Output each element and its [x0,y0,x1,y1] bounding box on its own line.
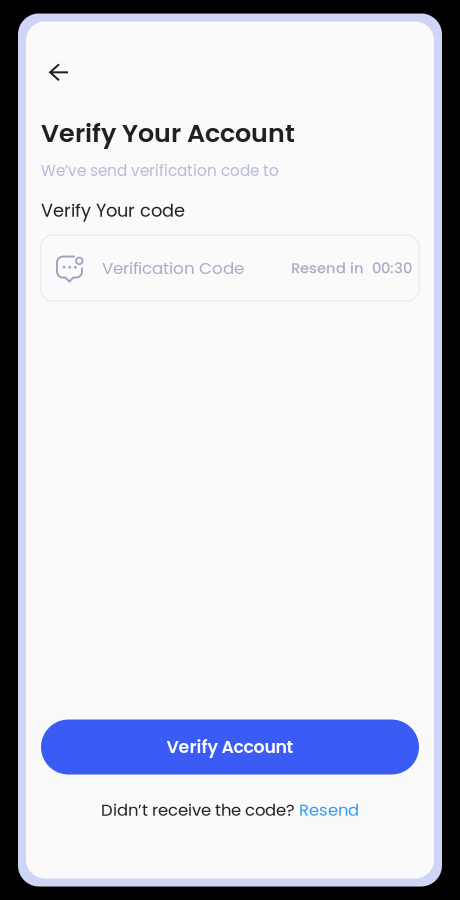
button[interactable]: Verify Account [41,719,419,774]
staticText: Verification Code [102,256,244,280]
staticText: Verify Your code [41,198,185,223]
staticText: Resend [299,798,359,821]
button[interactable]: Resend [299,798,359,821]
staticText: We’ve send verification code to [41,160,279,181]
button[interactable]: Back [39,55,79,89]
staticText: Resend in 00:30 [291,258,412,278]
staticText: Verify Account [166,735,293,759]
staticText: Verify Your Account [41,115,295,151]
staticText: Didn’t receive the code? [101,798,299,821]
